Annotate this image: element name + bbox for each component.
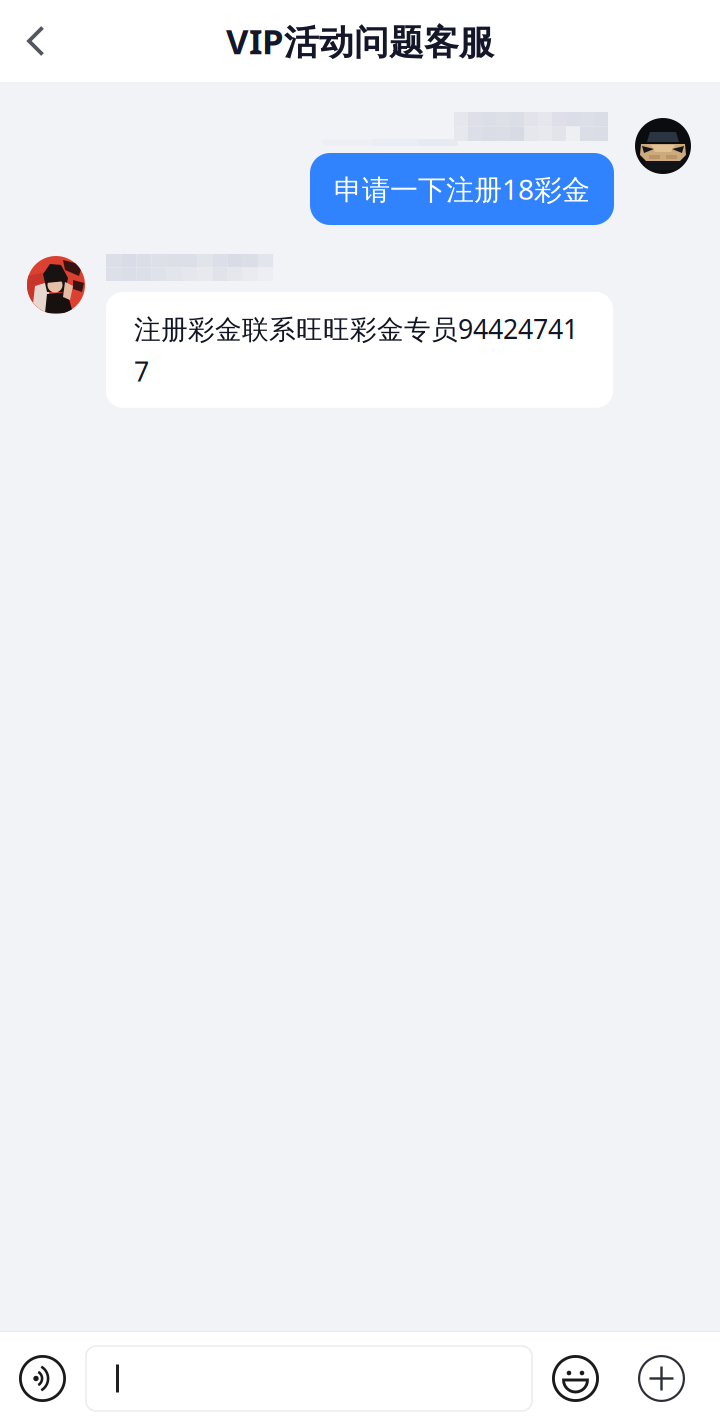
button[interactable]: 申请一下注册18彩金 xyxy=(310,153,614,225)
button[interactable]: Voice message xyxy=(19,1355,66,1402)
staticText: 申请一下注册18彩金 xyxy=(334,170,590,208)
button[interactable]: Emoji xyxy=(552,1355,599,1402)
button[interactable]: 注册彩金联系旺旺彩金专员94424741 7 xyxy=(106,292,613,408)
button[interactable]: More xyxy=(638,1355,685,1402)
button[interactable]: Your profile xyxy=(635,118,691,174)
button[interactable]: Back xyxy=(0,0,72,82)
staticText: 注册彩金联系旺旺彩金专员94424741 7 xyxy=(134,311,578,389)
button[interactable]: Agent profile xyxy=(27,256,85,314)
staticText: VIP活动问题客服 xyxy=(226,18,494,64)
button[interactable] xyxy=(86,1346,532,1411)
